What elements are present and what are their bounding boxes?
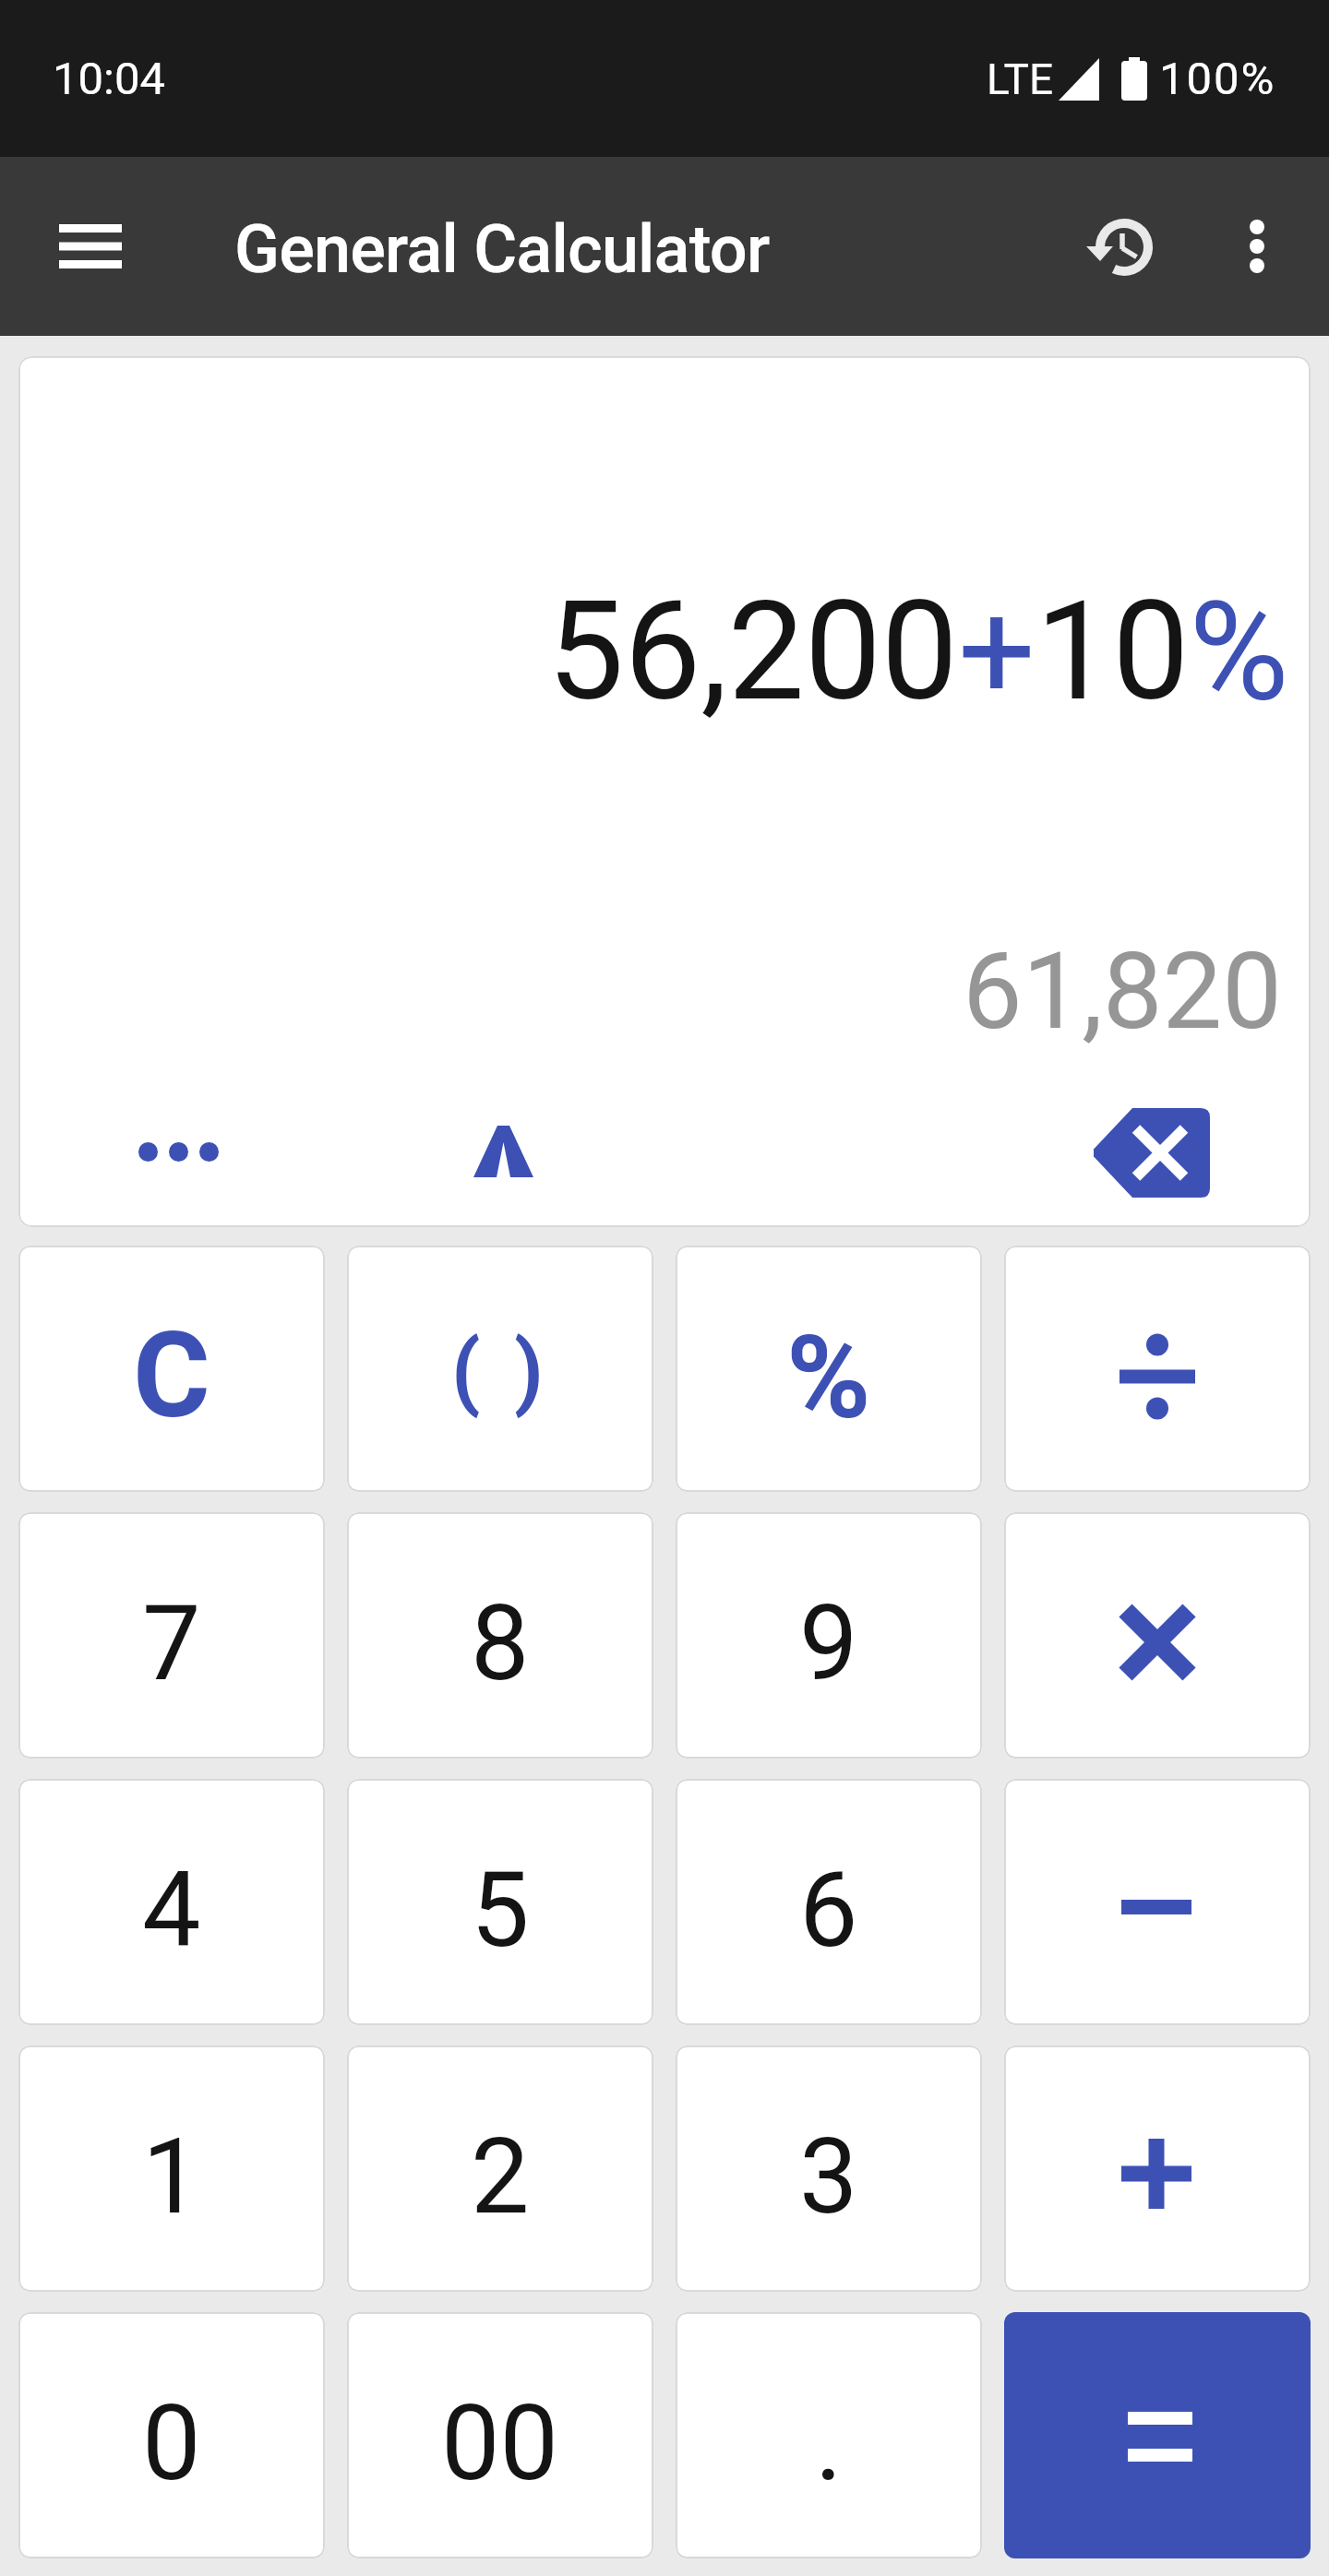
staticText: % (786, 1311, 871, 1445)
button[interactable]: . (676, 2312, 982, 2558)
staticText: 100% (1159, 53, 1276, 105)
button[interactable] (1004, 2045, 1311, 2292)
staticText: 6 (799, 1849, 858, 1971)
staticText: 8 (471, 1582, 530, 1704)
button[interactable] (92, 1087, 264, 1216)
button[interactable]: 4 (18, 1779, 325, 2025)
staticText: 56,200+10% (547, 572, 1289, 732)
button[interactable] (1207, 191, 1307, 302)
button[interactable]: 7 (18, 1512, 325, 1759)
staticText: 1 (142, 2116, 201, 2237)
staticText: . (815, 2382, 843, 2504)
staticText: 4 (142, 1849, 201, 1971)
button[interactable] (1004, 2312, 1311, 2558)
button[interactable] (1054, 1088, 1248, 1217)
staticText: 10:04 (53, 53, 166, 105)
button[interactable]: 5 (347, 1779, 653, 2025)
staticText: General Calculator (234, 210, 770, 288)
button[interactable] (1065, 191, 1176, 302)
staticText: C (133, 1306, 210, 1445)
staticText: 0 (142, 2382, 201, 2504)
button[interactable]: 6 (676, 1779, 982, 2025)
button[interactable]: C (18, 1246, 325, 1492)
staticText: LTE (987, 54, 1054, 104)
staticText: 9 (799, 1582, 858, 1704)
button[interactable] (1004, 1779, 1311, 2025)
button[interactable] (37, 193, 144, 300)
staticText: 5 (471, 1849, 530, 1971)
button[interactable]: 1 (18, 2045, 325, 2292)
button[interactable]: 0 (18, 2312, 325, 2558)
staticText: 7 (142, 1582, 201, 1704)
staticText: 00 (441, 2382, 559, 2504)
staticText: 3 (799, 2116, 858, 2237)
button[interactable]: 3 (676, 2045, 982, 2292)
button[interactable]: 9 (676, 1512, 982, 1759)
button[interactable] (420, 1087, 586, 1216)
button[interactable]: ( ) (347, 1246, 653, 1492)
button[interactable]: 2 (347, 2045, 653, 2292)
button[interactable] (1004, 1246, 1311, 1492)
button[interactable]: % (676, 1246, 982, 1492)
staticText: 61,820 (963, 929, 1282, 1054)
staticText: ( ) (451, 1323, 550, 1420)
button[interactable]: 8 (347, 1512, 653, 1759)
staticText: 2 (471, 2116, 530, 2237)
button[interactable]: 00 (347, 2312, 653, 2558)
button[interactable] (1004, 1512, 1311, 1759)
